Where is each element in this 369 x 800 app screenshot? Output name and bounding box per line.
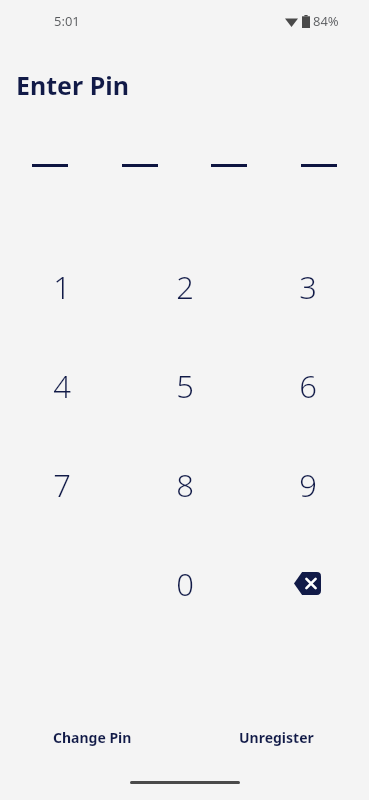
staticText: 8 (176, 464, 194, 506)
button[interactable]: Change Pin (0, 728, 184, 747)
staticText: Change Pin (53, 728, 132, 747)
button[interactable]: 9 (246, 435, 369, 534)
staticText: 0 (176, 563, 194, 605)
button[interactable]: Unregister (184, 728, 369, 747)
button[interactable]: 8 (123, 435, 246, 534)
staticText: 9 (299, 464, 317, 506)
button[interactable]: 6 (246, 336, 369, 435)
button[interactable]: 7 (0, 435, 123, 534)
staticText: Enter Pin (16, 68, 129, 102)
staticText: 5 (176, 365, 194, 407)
staticText: 84% (313, 12, 339, 30)
staticText: 4 (53, 365, 71, 407)
button[interactable]: 4 (0, 336, 123, 435)
staticText: 5:01 (54, 12, 80, 30)
staticText: 6 (299, 365, 317, 407)
staticText: 7 (53, 464, 71, 506)
button[interactable]: 0 (123, 534, 246, 633)
staticText: 1 (53, 266, 71, 308)
button[interactable]: 3 (246, 237, 369, 336)
staticText: 2 (176, 266, 194, 308)
button[interactable]: 2 (123, 237, 246, 336)
button[interactable]: 1 (0, 237, 123, 336)
staticText: 3 (299, 266, 317, 308)
button[interactable]: 5 (123, 336, 246, 435)
button[interactable]: Backspace (246, 534, 369, 633)
staticText: Unregister (239, 728, 314, 747)
